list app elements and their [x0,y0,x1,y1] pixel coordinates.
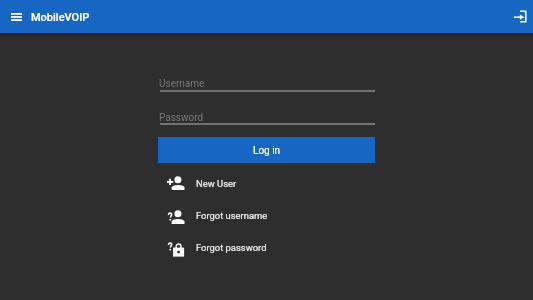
button[interactable]: Log in [513,10,527,24]
button[interactable]: Password [158,106,375,126]
button[interactable]: Forgot password [158,232,375,264]
staticText: MobileVOIP [31,11,90,24]
staticText: Forgot password [196,242,267,253]
button[interactable]: New User [158,168,375,200]
button[interactable]: Open navigation menu [4,5,28,29]
button[interactable]: Username [158,72,375,92]
button[interactable]: Log in [158,137,375,163]
staticText: New User [196,178,237,189]
button[interactable]: Forgot username [158,200,375,232]
staticText: Password [159,112,204,124]
staticText: Username [159,78,205,90]
staticText: Forgot username [196,210,268,221]
staticText: Log in [253,145,281,157]
